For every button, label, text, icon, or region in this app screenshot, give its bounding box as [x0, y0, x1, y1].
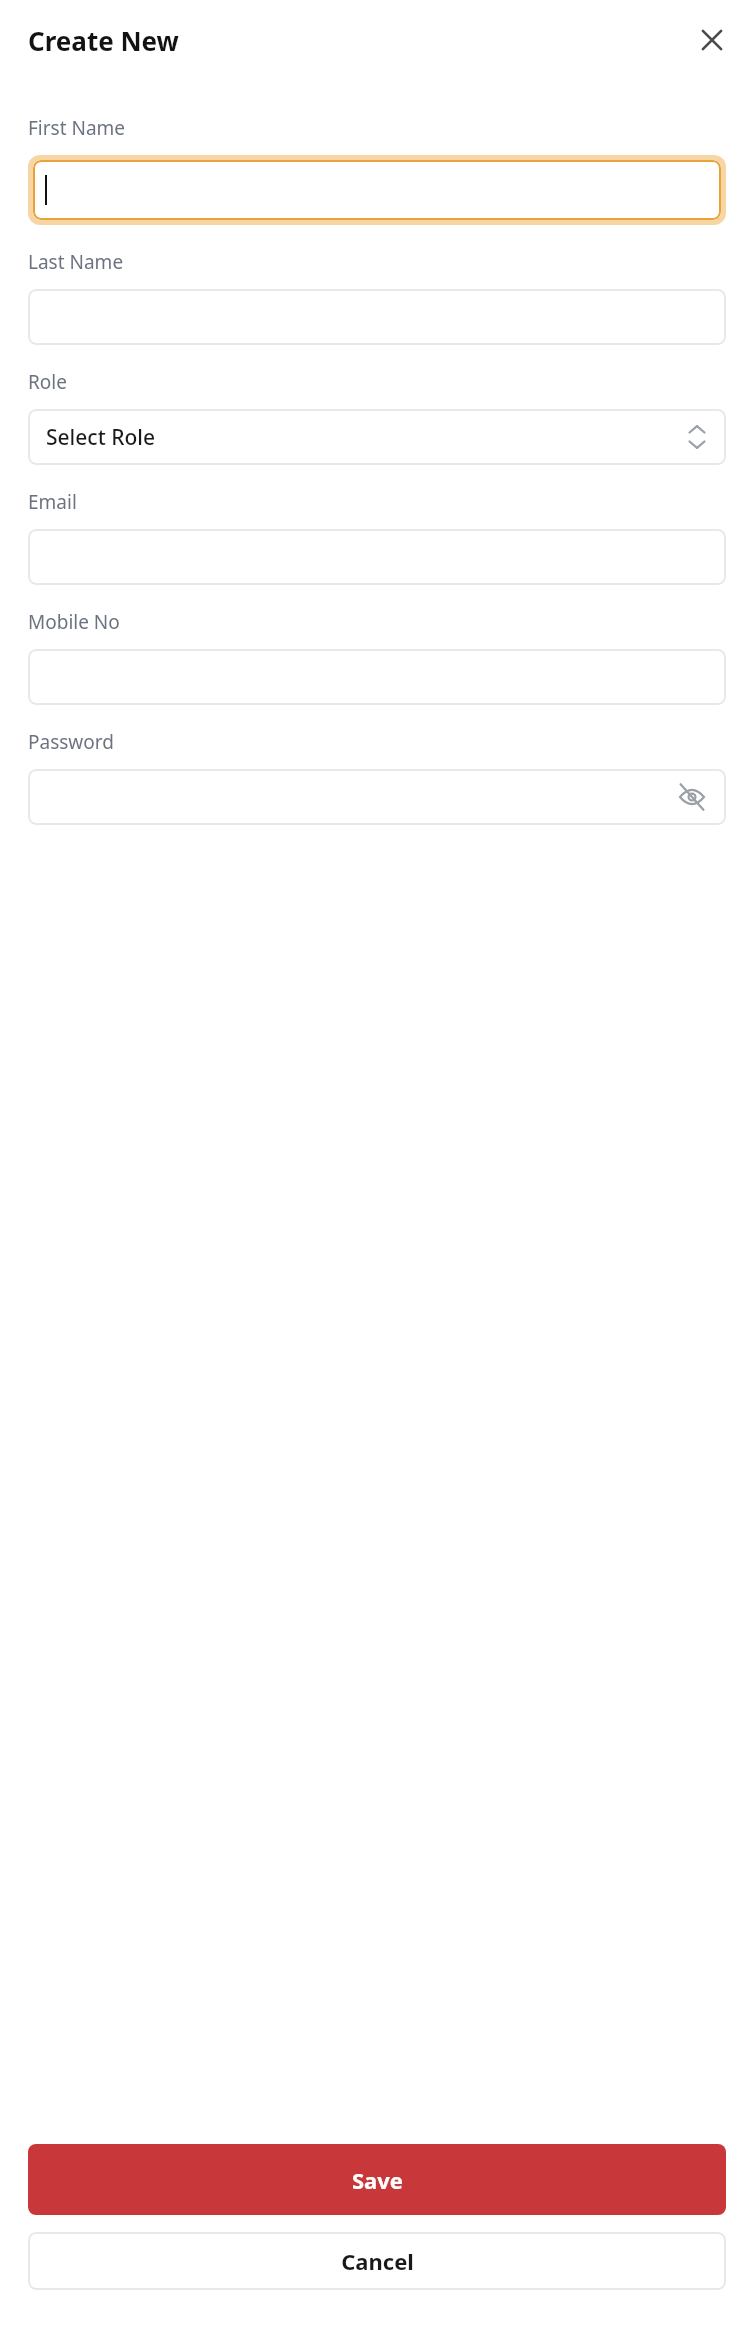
staticText: Email	[28, 489, 77, 515]
staticText: Select Role	[46, 423, 155, 452]
button[interactable]: Show password	[672, 777, 712, 817]
button[interactable]	[28, 649, 726, 705]
staticText: Last Name	[28, 249, 124, 275]
staticText: First Name	[28, 115, 126, 141]
button[interactable]: Close	[692, 20, 732, 60]
staticText: Password	[28, 729, 114, 755]
button[interactable]: Select Role	[28, 409, 726, 465]
button[interactable]: Save	[28, 2144, 726, 2215]
staticText: Cancel	[341, 2246, 414, 2276]
button[interactable]: Cancel	[28, 2232, 726, 2290]
button[interactable]: Show password	[28, 769, 726, 825]
staticText: Mobile No	[28, 609, 120, 635]
button[interactable]	[28, 529, 726, 585]
staticText: Role	[28, 369, 67, 395]
button[interactable]	[33, 160, 721, 220]
button[interactable]	[28, 289, 726, 345]
staticText: Save	[352, 2165, 403, 2195]
staticText: Create New	[28, 23, 179, 58]
